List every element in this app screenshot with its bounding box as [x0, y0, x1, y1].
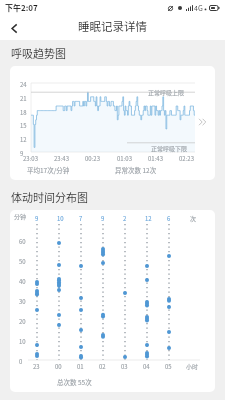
staticText: 异常次数 12次	[115, 165, 157, 174]
staticText: 40	[19, 277, 26, 286]
staticText: 2	[123, 214, 127, 223]
staticText: 12	[145, 214, 152, 223]
staticText: 下午2:07	[5, 2, 38, 14]
staticText: 0	[19, 357, 23, 366]
staticText: 60	[19, 237, 26, 246]
staticText: 50	[19, 257, 26, 266]
staticText: 30	[19, 297, 26, 306]
staticText: 7	[79, 214, 83, 223]
staticText: 04	[143, 362, 150, 371]
staticText: 小时	[186, 362, 199, 371]
staticText: 分钟	[14, 212, 27, 221]
staticText: 24	[20, 80, 27, 89]
staticText: 01:03	[117, 154, 132, 163]
staticText: 体动时间分布图	[11, 189, 88, 205]
staticText: 10	[19, 337, 26, 346]
staticText: 18	[20, 108, 27, 117]
button[interactable]: 60	[10, 210, 215, 392]
staticText: 4G	[194, 3, 203, 13]
staticText: 23:43	[54, 154, 69, 163]
staticText: 呼吸趋势图	[11, 45, 66, 61]
staticText: 9	[35, 214, 39, 223]
staticText: 21	[20, 94, 27, 103]
staticText: 15	[20, 121, 27, 130]
staticText: 6	[167, 214, 171, 223]
button[interactable]: 24	[10, 66, 215, 180]
staticText: 次	[190, 214, 197, 223]
staticText: 01	[77, 362, 84, 371]
staticText: 03	[121, 362, 128, 371]
button[interactable]: 返回	[0, 16, 28, 40]
staticText: 20	[19, 317, 26, 326]
staticText: 01:43	[148, 154, 163, 163]
staticText: 23	[33, 362, 40, 371]
staticText: 正常呼吸下限	[151, 144, 188, 153]
staticText: 00:23	[85, 154, 100, 163]
staticText: 12	[20, 135, 27, 144]
staticText: 9	[101, 214, 105, 223]
staticText: 05	[165, 362, 172, 371]
staticText: 正常呼吸上限	[148, 88, 185, 97]
staticText: 10	[57, 214, 64, 223]
staticText: 00	[55, 362, 62, 371]
staticText: 睡眠记录详情	[78, 18, 147, 35]
staticText: 02:23	[179, 154, 194, 163]
staticText: 总次数 55次	[57, 377, 92, 386]
staticText: 02	[99, 362, 106, 371]
staticText: 9	[20, 149, 24, 158]
staticText: 23:03	[23, 154, 38, 163]
staticText: 平均17次/分钟	[27, 165, 70, 174]
